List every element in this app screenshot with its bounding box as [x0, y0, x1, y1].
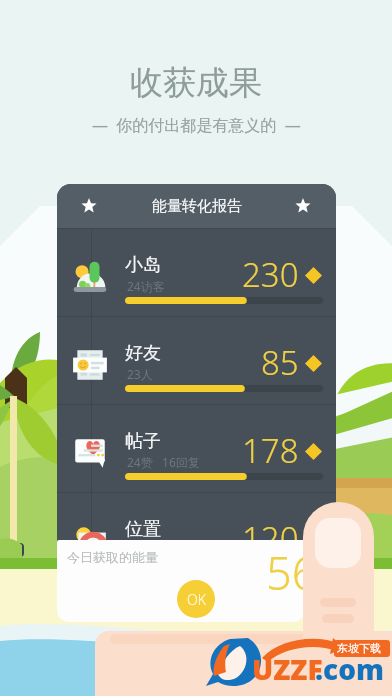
staticText: 收获成果 [130, 62, 262, 104]
staticText: OK [187, 590, 206, 609]
button[interactable]: 小岛 [57, 228, 336, 316]
button[interactable]: Star [287, 184, 319, 228]
staticText: 178 [242, 428, 299, 473]
staticText: 24赞 16回复 [127, 454, 200, 470]
staticText: 120 [242, 516, 299, 561]
staticText: 85 [261, 340, 299, 385]
staticText: 23人 [127, 366, 153, 382]
staticText: 24访客 [127, 278, 165, 294]
staticText: 好友 [125, 342, 161, 365]
button[interactable]: 帖子 [57, 404, 336, 492]
button[interactable]: Favorite [73, 184, 105, 228]
staticText: 帖子 [125, 430, 161, 453]
staticText: 位置 [125, 518, 161, 541]
staticText: 能量转化报告 [152, 197, 242, 216]
button[interactable]: OK [177, 580, 215, 618]
staticText: 小岛 [125, 254, 161, 277]
staticText: UZZF [252, 650, 323, 688]
button[interactable]: 好友 [57, 316, 336, 404]
staticText: 230 [242, 252, 299, 297]
staticText: 东坡下载 [337, 641, 381, 655]
staticText: .com [315, 650, 385, 688]
staticText: 今日获取的能量 [67, 549, 158, 565]
staticText: 56 [266, 542, 305, 603]
button[interactable]: 位置 [57, 492, 336, 580]
staticText: — 你的付出都是有意义的 — [92, 114, 301, 136]
